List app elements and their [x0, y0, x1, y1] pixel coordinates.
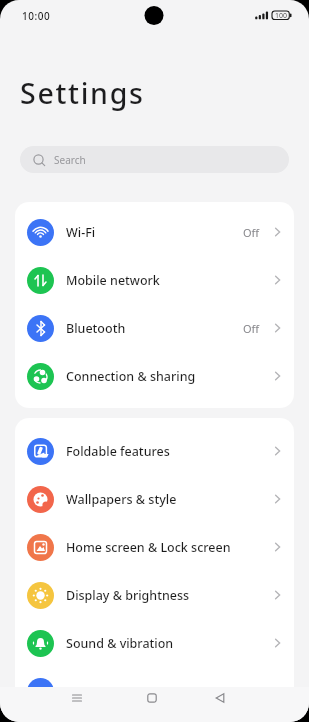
button[interactable] [135, 686, 169, 710]
staticText: Off [243, 225, 260, 240]
staticText: Mobile network [66, 272, 160, 289]
staticText: Wi-Fi [66, 224, 96, 241]
staticText: Home screen & Lock screen [66, 539, 231, 556]
staticText: Search [54, 153, 86, 167]
button[interactable]: Search [20, 146, 289, 173]
button[interactable]: Wallpapers & style [15, 475, 294, 523]
button[interactable]: Bluetooth [15, 304, 294, 352]
button[interactable]: Sound & vibration [15, 619, 294, 667]
staticText: 100 [275, 11, 288, 21]
button[interactable]: Display & brightness [15, 571, 294, 619]
button[interactable] [203, 686, 237, 710]
staticText: 10:00 [22, 9, 51, 23]
staticText: Settings [20, 74, 145, 113]
staticText: Wallpapers & style [66, 491, 177, 508]
staticText: Foldable features [66, 443, 170, 460]
button[interactable]: Foldable features [15, 427, 294, 475]
button[interactable]: Home screen & Lock screen [15, 523, 294, 571]
button[interactable] [15, 667, 294, 715]
staticText: Sound & vibration [66, 635, 174, 652]
button[interactable]: Wi-Fi [15, 208, 294, 256]
staticText: Connection & sharing [66, 368, 196, 385]
button[interactable]: Connection & sharing [15, 352, 294, 400]
button[interactable]: Mobile network [15, 256, 294, 304]
button[interactable] [60, 686, 94, 710]
staticText: Off [243, 321, 260, 336]
staticText: Display & brightness [66, 587, 190, 604]
staticText: Bluetooth [66, 320, 126, 337]
